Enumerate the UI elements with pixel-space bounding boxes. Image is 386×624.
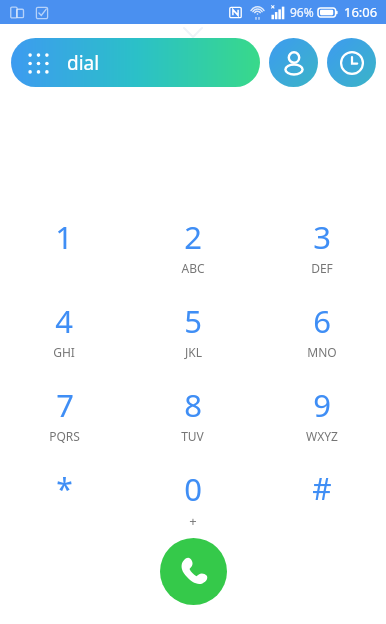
button[interactable]: 5 (128, 294, 257, 378)
staticText: MNO (307, 344, 337, 360)
staticText: # (312, 468, 332, 509)
staticText: * (56, 468, 73, 509)
button[interactable]: Call (160, 538, 227, 605)
staticText: 0 (184, 468, 202, 510)
button[interactable]: 4 (0, 294, 128, 378)
staticText: 1 (55, 216, 73, 258)
staticText: 4 (55, 300, 73, 342)
button[interactable]: 9 (257, 378, 386, 462)
staticText: 9 (313, 384, 331, 426)
staticText: TUV (181, 428, 204, 444)
button[interactable]: 3 (257, 210, 386, 294)
button[interactable]: 0 (128, 462, 257, 534)
staticText: 6 (313, 300, 331, 342)
staticText: DEF (311, 260, 333, 276)
staticText: 8 (184, 384, 202, 426)
staticText: JKL (185, 344, 202, 360)
button[interactable]: 8 (128, 378, 257, 462)
button[interactable]: Contacts (269, 38, 318, 87)
button[interactable]: * (0, 462, 128, 534)
button[interactable]: 1 (0, 210, 128, 294)
staticText: 16:06 (344, 3, 378, 21)
button[interactable]: 7 (0, 378, 128, 462)
staticText: 3 (313, 216, 331, 258)
staticText: PQRS (49, 428, 80, 444)
staticText: WXYZ (306, 428, 338, 444)
staticText: + (189, 512, 197, 530)
button[interactable]: 2 (128, 210, 257, 294)
staticText: GHI (53, 344, 75, 360)
button[interactable]: Call history (327, 38, 376, 87)
staticText: ABC (181, 260, 205, 276)
staticText: 96% (290, 4, 314, 20)
staticText: 2 (184, 216, 202, 258)
staticText: 7 (56, 384, 74, 426)
button[interactable]: # (257, 462, 386, 534)
staticText: 5 (184, 300, 202, 342)
staticText: dial (67, 50, 100, 76)
button[interactable]: 6 (257, 294, 386, 378)
button[interactable]: dial (11, 38, 260, 87)
